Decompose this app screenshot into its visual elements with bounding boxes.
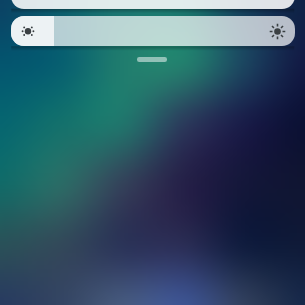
button[interactable]: [11, 0, 295, 9]
button[interactable]: [137, 57, 167, 62]
button[interactable]: [11, 16, 295, 46]
